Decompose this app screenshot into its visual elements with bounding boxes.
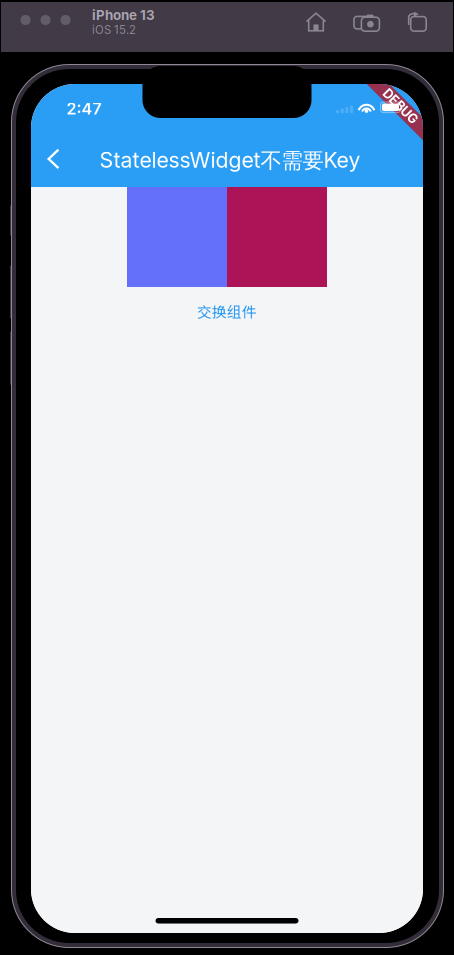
- staticText: 交换组件: [197, 300, 257, 322]
- button[interactable]: 交换组件: [167, 290, 287, 332]
- button[interactable]: Screenshot: [352, 7, 382, 37]
- staticText: 2:47: [66, 99, 101, 118]
- button[interactable]: Home: [301, 7, 331, 37]
- staticText: DEBUG: [378, 99, 422, 114]
- button[interactable]: Back: [35, 135, 83, 183]
- staticText: iOS 15.2: [92, 23, 136, 37]
- button[interactable]: Record Screen: [403, 7, 433, 37]
- staticText: iPhone 13: [92, 7, 155, 23]
- staticText: StatelessWidget不需要Key: [99, 147, 360, 174]
